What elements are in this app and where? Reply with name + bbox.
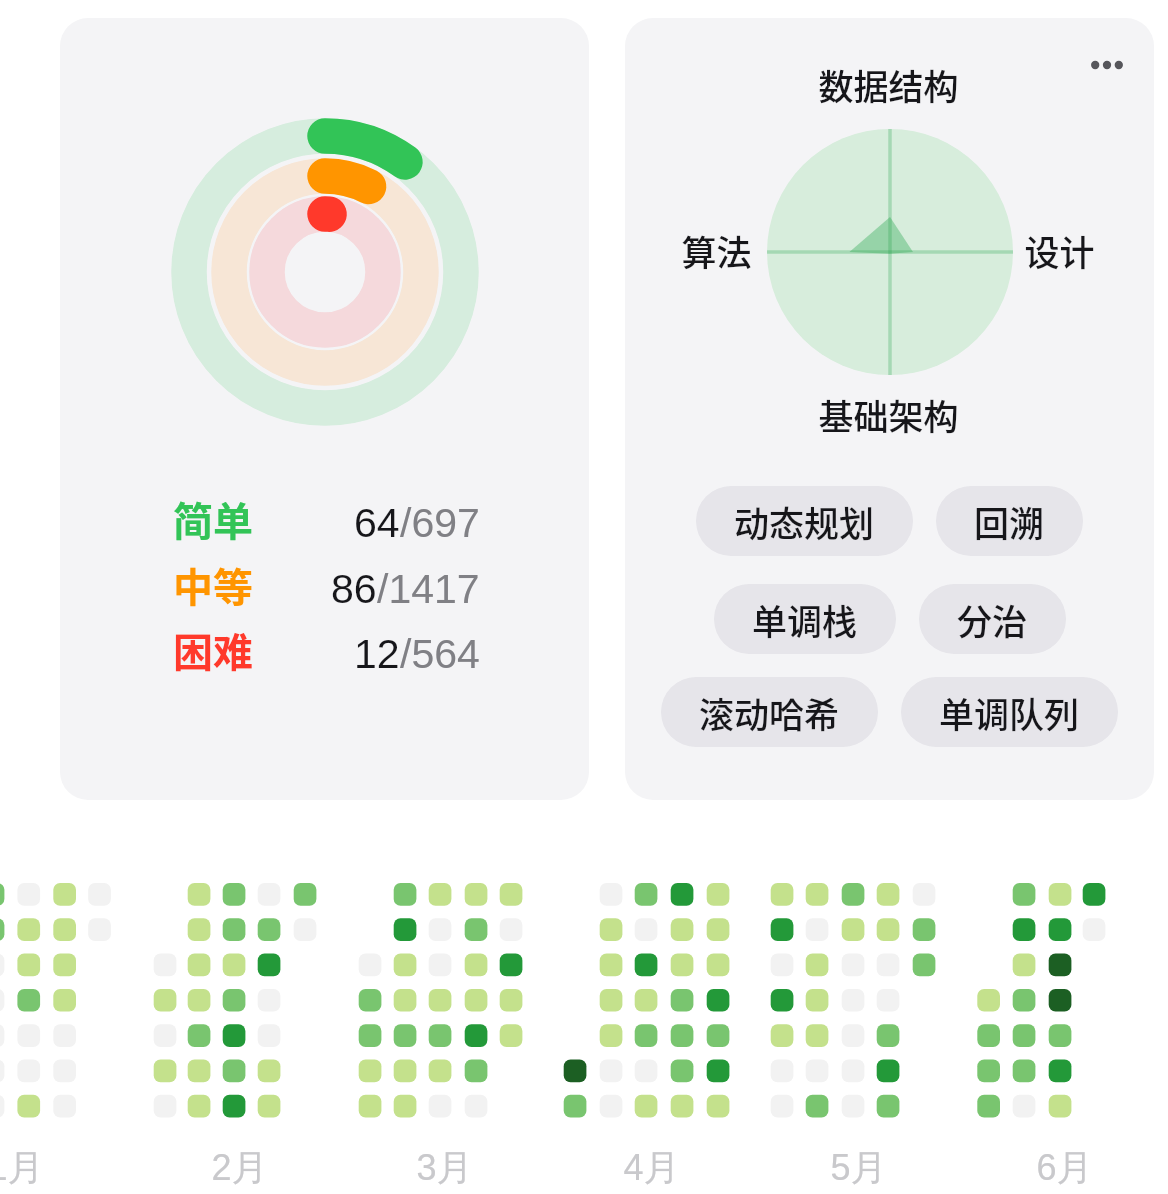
button[interactable]: 动态规划: [696, 486, 913, 556]
staticText: 困难: [173, 621, 253, 679]
staticText: 5月: [830, 1145, 887, 1190]
button[interactable]: 中等: [160, 549, 560, 607]
button[interactable]: 分治: [919, 584, 1066, 654]
staticText: 算法: [681, 225, 752, 276]
staticText: 动态规划: [734, 496, 875, 547]
staticText: 单调栈: [752, 594, 858, 645]
staticText: 4月: [623, 1145, 680, 1190]
staticText: 86: [331, 566, 377, 612]
staticText: 回溯: [974, 496, 1045, 547]
staticText: 12: [354, 631, 400, 677]
staticText: 单调队列: [939, 687, 1080, 738]
staticText: /697: [400, 500, 480, 546]
staticText: 2月: [211, 1145, 268, 1190]
staticText: 3月: [416, 1145, 473, 1190]
button[interactable]: 滚动哈希: [661, 677, 878, 747]
staticText: 基础架构: [818, 389, 959, 440]
staticText: /1417: [377, 566, 480, 612]
staticText: 中等: [173, 556, 253, 614]
button[interactable]: 回溯: [936, 486, 1083, 556]
button[interactable]: 困难: [160, 614, 560, 672]
button[interactable]: 单调队列: [901, 677, 1118, 747]
button[interactable]: More options: [1067, 41, 1147, 89]
button[interactable]: 简单: [160, 483, 560, 541]
staticText: /564: [400, 631, 480, 677]
button[interactable]: 单调栈: [714, 584, 896, 654]
staticText: 数据结构: [818, 59, 959, 110]
staticText: 64: [354, 500, 400, 546]
staticText: 1月: [0, 1145, 44, 1190]
staticText: 分治: [957, 594, 1028, 645]
staticText: 简单: [173, 490, 253, 548]
staticText: 6月: [1036, 1145, 1093, 1190]
staticText: 设计: [1024, 225, 1095, 276]
staticText: 滚动哈希: [699, 687, 840, 738]
